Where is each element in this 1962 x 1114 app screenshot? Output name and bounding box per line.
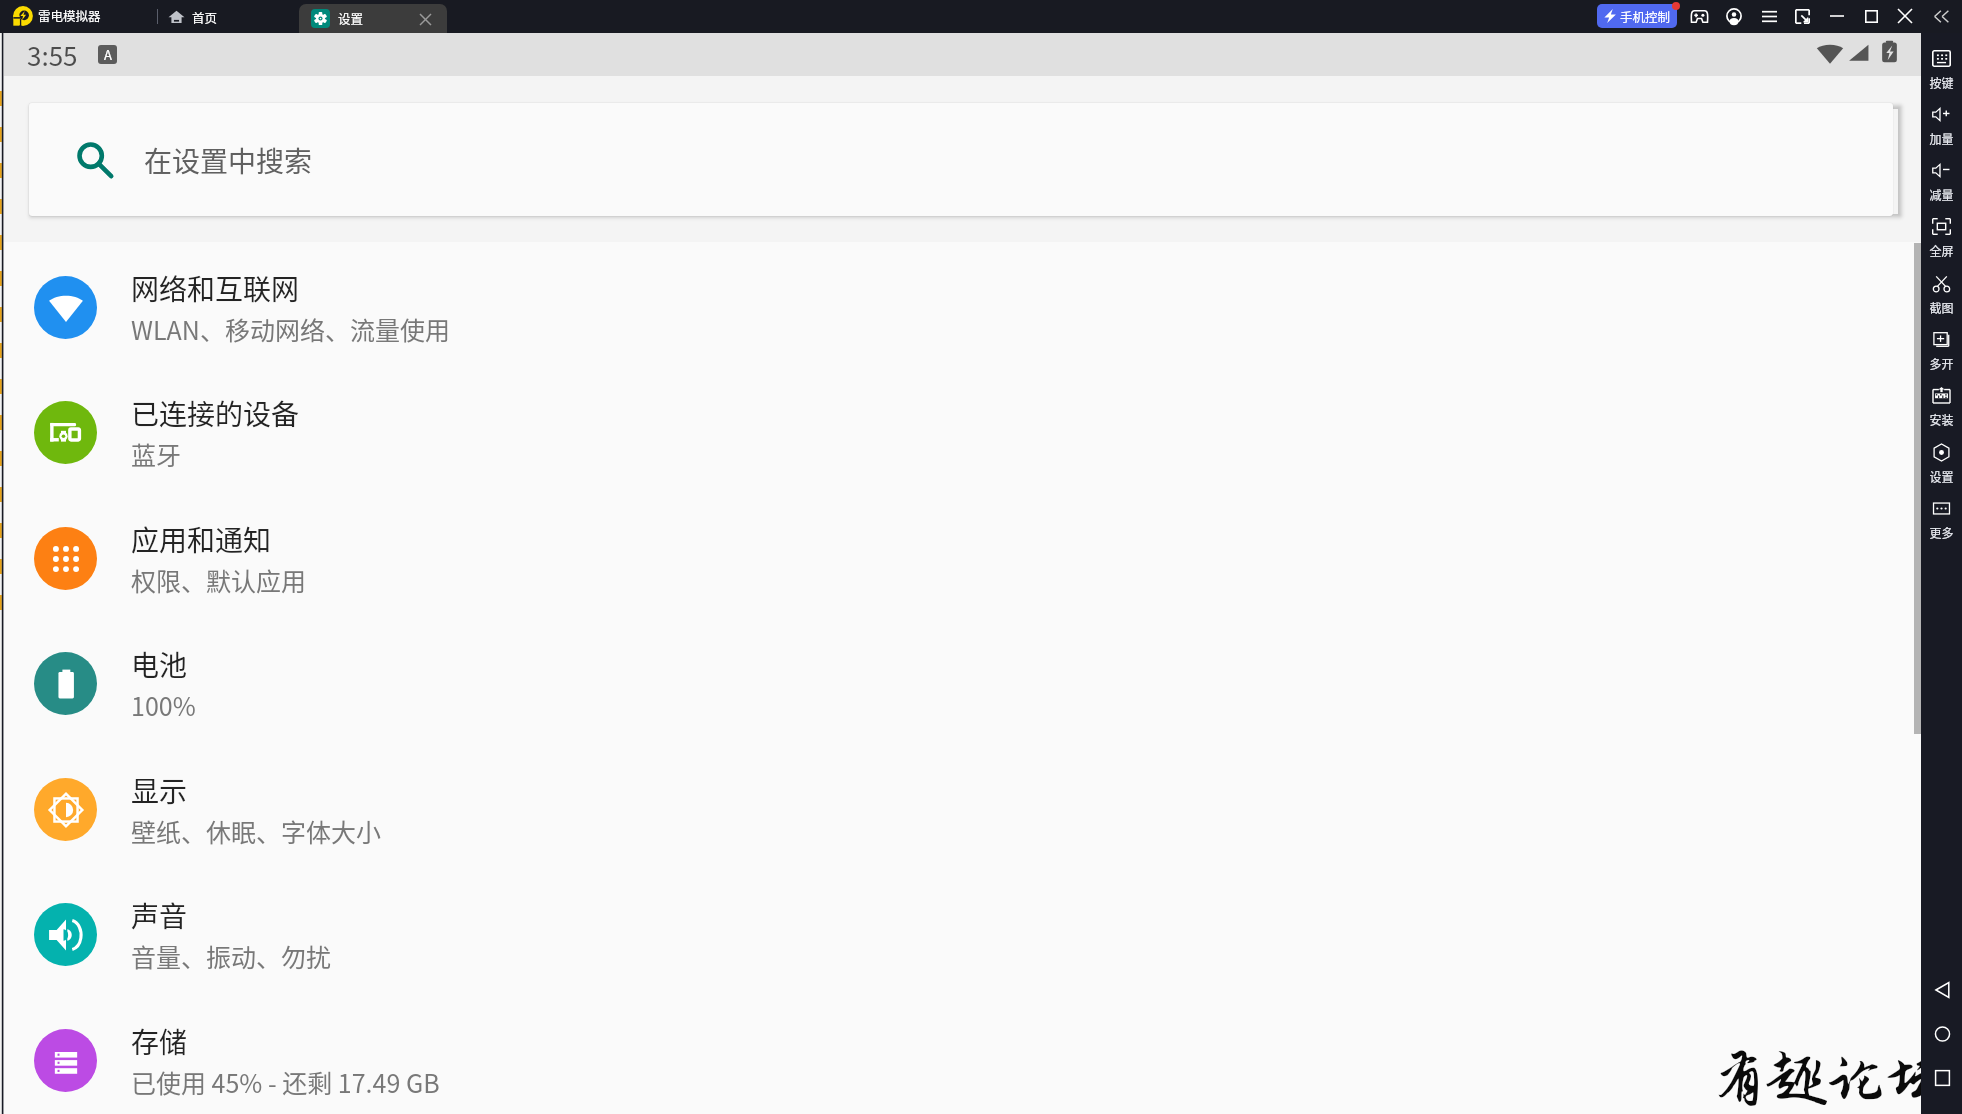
button[interactable]: 首页 [166, 3, 220, 30]
staticText: WLAN、移动网络、流量使用 [131, 311, 450, 347]
button[interactable]: Game [1687, 4, 1711, 28]
button[interactable]: Minimize [1825, 4, 1849, 28]
button[interactable]: 按键 [1921, 50, 1962, 91]
staticText: 设置 [1929, 468, 1954, 485]
staticText: 手机控制 [1620, 7, 1671, 25]
staticText: 加量 [1929, 130, 1954, 147]
button[interactable]: Recents [1928, 1064, 1956, 1092]
button[interactable]: 设置 [299, 4, 447, 33]
staticText: 音量、振动、勿扰 [131, 938, 332, 974]
button[interactable]: 显示 [0, 746, 1921, 872]
staticText: 截图 [1929, 299, 1954, 316]
staticText: 更多 [1929, 524, 1954, 541]
button[interactable]: 应用和通知 [0, 495, 1921, 621]
button[interactable]: Account [1722, 4, 1746, 28]
button[interactable]: 安装 [1921, 387, 1962, 428]
staticText: 已连接的设备 [131, 393, 300, 434]
button[interactable]: 存储 [0, 997, 1921, 1114]
staticText: 全屏 [1929, 242, 1954, 259]
staticText: 已使用 45% - 还剩 17.49 GB [131, 1064, 440, 1100]
staticText: 安装 [1929, 411, 1954, 428]
staticText: 应用和通知 [131, 519, 272, 560]
staticText: A [104, 45, 112, 64]
button[interactable]: 减量 [1921, 162, 1962, 203]
button[interactable]: 电池 [0, 620, 1921, 746]
staticText: 电池 [131, 644, 188, 685]
button[interactable]: Home [1928, 1020, 1956, 1048]
button[interactable]: 网络和互联网 [0, 244, 1921, 370]
button[interactable]: 截图 [1921, 275, 1962, 316]
staticText: 3:55 [27, 36, 78, 74]
button[interactable]: 全屏 [1921, 218, 1962, 259]
button[interactable]: Close tab [415, 9, 435, 29]
staticText: 壁纸、休眠、字体大小 [131, 813, 382, 849]
button[interactable]: 声音 [0, 871, 1921, 997]
staticText: 在设置中搜索 [144, 140, 313, 181]
button[interactable]: 已连接的设备 [0, 369, 1921, 495]
staticText: 存储 [131, 1021, 188, 1062]
staticText: 权限、默认应用 [131, 562, 307, 598]
staticText: 多开 [1929, 355, 1954, 372]
staticText: 按键 [1929, 74, 1954, 91]
button[interactable]: 手机控制 [1597, 4, 1677, 28]
staticText: 减量 [1929, 186, 1954, 203]
button[interactable]: 加量 [1921, 106, 1962, 147]
staticText: 声音 [131, 895, 188, 936]
button[interactable]: Menu [1757, 4, 1781, 28]
button[interactable]: 在设置中搜索 [29, 103, 1893, 216]
button[interactable]: 设置 [1921, 444, 1962, 485]
button[interactable]: 多开 [1921, 331, 1962, 372]
staticText: 显示 [131, 770, 188, 811]
staticText: 网络和互联网 [131, 268, 300, 309]
button[interactable]: Maximize [1859, 4, 1883, 28]
button[interactable]: 更多 [1921, 500, 1962, 541]
button[interactable]: Back [1928, 976, 1956, 1004]
staticText: 蓝牙 [131, 436, 182, 472]
button[interactable]: Screenshot region [1790, 4, 1814, 28]
button[interactable]: Close [1893, 4, 1917, 28]
staticText: 100% [131, 687, 196, 723]
staticText: 有趣论坛 [1709, 1047, 1944, 1112]
staticText: 首页 [192, 8, 218, 26]
staticText: 设置 [338, 9, 364, 27]
staticText: 雷电模拟器 [38, 6, 101, 24]
button[interactable]: Collapse sidebar [1929, 4, 1953, 28]
